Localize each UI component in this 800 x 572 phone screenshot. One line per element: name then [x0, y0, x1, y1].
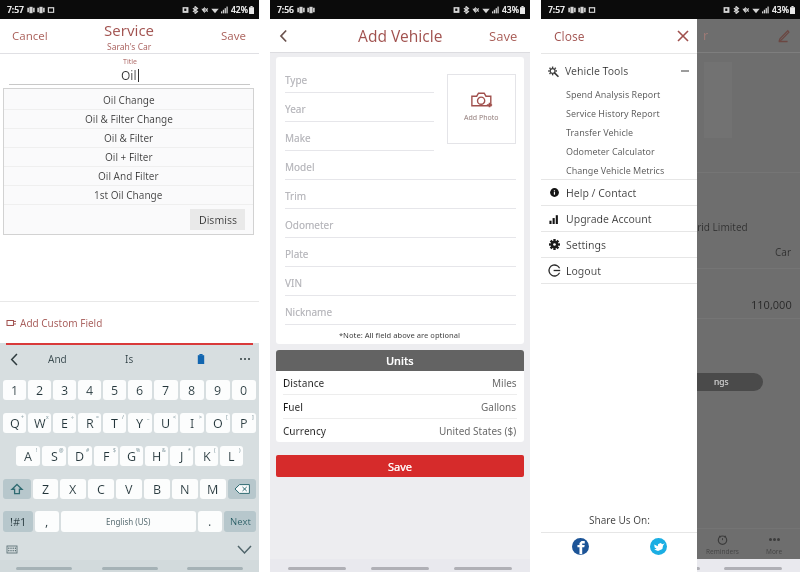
button[interactable]: C	[88, 479, 114, 499]
button[interactable]: M	[200, 479, 226, 499]
staticText: F	[103, 448, 110, 465]
button[interactable]: More options	[237, 351, 253, 367]
button[interactable]: Hide keyboard	[236, 541, 252, 557]
button[interactable]: x	[28, 413, 51, 433]
button[interactable]: 1st Oil Change	[3, 186, 254, 204]
button[interactable]: 0	[232, 380, 256, 400]
button[interactable]: Reminders	[696, 530, 748, 559]
button[interactable]: 1	[3, 380, 26, 400]
button[interactable]: Z	[33, 479, 58, 499]
button[interactable]: Oil + Filter	[3, 148, 254, 166]
button[interactable]: <	[154, 413, 178, 433]
button[interactable]: )	[220, 446, 243, 466]
staticText: )	[239, 447, 241, 454]
button[interactable]: 7	[154, 380, 178, 400]
button[interactable]: Fuel	[276, 395, 524, 418]
staticText: Vehicle Tools	[565, 64, 629, 78]
button[interactable]: And	[22, 345, 93, 373]
staticText: L	[228, 448, 235, 465]
button[interactable]: Shift	[3, 479, 31, 499]
button[interactable]: 3	[53, 380, 76, 400]
staticText: Save	[221, 28, 247, 44]
button[interactable]: Oil Change	[3, 91, 254, 109]
button[interactable]: 6	[128, 380, 152, 400]
staticText: 3	[61, 382, 69, 399]
staticText: Save	[388, 459, 413, 474]
button[interactable]: Facebook	[572, 538, 589, 555]
button[interactable]: Upgrade Account	[541, 206, 697, 231]
button[interactable]: _	[128, 413, 152, 433]
button[interactable]: 9	[206, 380, 230, 400]
button[interactable]: Cancel	[6, 22, 54, 50]
button[interactable]: English (US)	[61, 511, 196, 532]
button[interactable]: >	[180, 413, 204, 433]
button[interactable]: Dismiss	[190, 209, 245, 230]
staticText: !	[36, 447, 38, 454]
button[interactable]: 2	[28, 380, 51, 400]
button[interactable]: 5	[103, 380, 126, 400]
button[interactable]: !	[16, 446, 40, 466]
button[interactable]: Save	[276, 455, 524, 477]
button[interactable]: X	[60, 479, 86, 499]
button[interactable]: !#1	[3, 511, 33, 532]
button[interactable]: More	[748, 530, 800, 559]
button[interactable]: V	[116, 479, 142, 499]
button[interactable]: Transfer Vehicle	[541, 122, 697, 141]
button[interactable]: Backspace	[228, 479, 256, 499]
button[interactable]: Distance	[276, 371, 524, 394]
button[interactable]: &	[145, 446, 168, 466]
button[interactable]: Spend Analysis Report	[541, 84, 697, 103]
button[interactable]: *	[170, 446, 193, 466]
button[interactable]: $	[94, 446, 118, 466]
button[interactable]: [	[206, 413, 230, 433]
staticText: ngs	[714, 376, 729, 388]
button[interactable]: +	[3, 413, 26, 433]
button[interactable]: Logout	[541, 258, 697, 283]
button[interactable]: Odometer Calculator	[541, 141, 697, 160]
button[interactable]: =	[78, 413, 101, 433]
button[interactable]: @	[42, 446, 66, 466]
button[interactable]: Service History Report	[541, 103, 697, 122]
staticText: 43%	[772, 4, 789, 16]
button[interactable]: Is	[93, 345, 165, 373]
button[interactable]: /	[103, 413, 126, 433]
button[interactable]: .	[198, 511, 222, 532]
staticText: <	[173, 414, 176, 421]
button[interactable]: Oil & Filter	[3, 129, 254, 147]
staticText: Model	[285, 160, 315, 174]
button[interactable]: Previous	[6, 351, 22, 367]
button[interactable]: 8	[180, 380, 204, 400]
button[interactable]: Settings	[541, 232, 697, 257]
staticText: Odometer Calculator	[566, 145, 655, 157]
button[interactable]: Save	[484, 21, 527, 51]
button[interactable]: Change Vehicle Metrics	[541, 160, 697, 179]
button[interactable]: 4	[78, 380, 101, 400]
button[interactable]: Oil & Filter Change	[3, 110, 254, 128]
staticText: %	[136, 447, 141, 454]
button[interactable]: Back	[273, 26, 293, 46]
button[interactable]: B	[144, 479, 170, 499]
button[interactable]: Oil And Filter	[3, 167, 254, 185]
button[interactable]: Edit	[774, 27, 792, 45]
button[interactable]: N	[172, 479, 198, 499]
button[interactable]: Next	[224, 511, 256, 532]
button[interactable]: Add Photo	[447, 74, 516, 144]
button[interactable]: ,	[35, 511, 59, 532]
button[interactable]: Add Custom Field	[0, 302, 259, 343]
button[interactable]: Close	[541, 19, 697, 53]
button[interactable]: Twitter	[650, 538, 667, 555]
staticText: _	[147, 414, 150, 421]
button[interactable]: ]	[232, 413, 256, 433]
button[interactable]: Currency	[276, 419, 524, 442]
button[interactable]: #	[68, 446, 92, 466]
button[interactable]: Save	[215, 22, 253, 50]
button[interactable]: (	[195, 446, 218, 466]
button[interactable]: ÷	[53, 413, 76, 433]
staticText: Nickname	[285, 305, 333, 319]
button[interactable]: %	[120, 446, 143, 466]
button[interactable]: Clipboard	[165, 345, 237, 373]
button[interactable]: Help / Contact	[541, 180, 697, 205]
button[interactable]: Vehicle Tools	[541, 58, 697, 84]
button[interactable]: ngs	[683, 373, 763, 391]
staticText: Service History Report	[566, 107, 660, 119]
